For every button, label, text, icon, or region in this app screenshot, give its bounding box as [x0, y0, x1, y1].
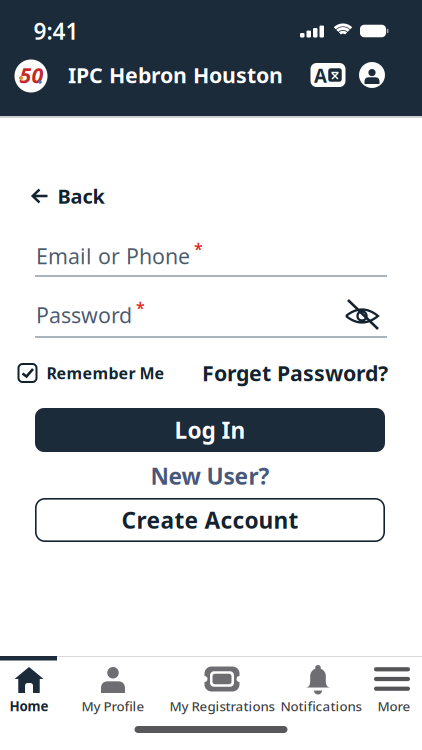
- button[interactable]: Back: [31, 183, 104, 209]
- staticText: Log In: [174, 415, 245, 445]
- staticText: My Registrations: [169, 697, 274, 715]
- button[interactable]: My Profile: [58, 656, 168, 726]
- staticText: Email or Phone: [36, 242, 190, 270]
- button[interactable]: Remember Me: [17, 362, 164, 384]
- staticText: Remember Me: [46, 362, 164, 384]
- staticText: More: [377, 697, 410, 715]
- button[interactable]: Translate: [310, 63, 345, 87]
- button[interactable]: New User?: [150, 461, 269, 491]
- button[interactable]: Log In: [35, 408, 385, 452]
- staticText: *: [194, 238, 203, 259]
- button[interactable]: Show password: [345, 300, 379, 330]
- button[interactable]: Home: [0, 656, 58, 726]
- staticText: 9:41: [33, 16, 78, 46]
- button[interactable]: Forget Password?: [202, 359, 388, 387]
- staticText: Create Account: [121, 505, 298, 535]
- staticText: 50: [19, 61, 43, 89]
- button[interactable]: More: [366, 656, 422, 726]
- staticText: A: [314, 63, 327, 88]
- button[interactable]: My Registrations: [168, 656, 276, 726]
- staticText: Back: [57, 183, 104, 209]
- staticText: Home: [9, 697, 48, 715]
- button[interactable]: Create Account: [35, 498, 385, 542]
- staticText: Notifications: [280, 697, 361, 715]
- staticText: *: [136, 297, 145, 318]
- staticText: Forget Password?: [202, 359, 388, 387]
- button[interactable]: Notifications: [276, 656, 366, 726]
- staticText: New User?: [150, 461, 269, 491]
- button[interactable]: Account: [359, 62, 385, 88]
- staticText: My Profile: [81, 697, 144, 715]
- staticText: IPC Hebron Houston: [68, 61, 283, 89]
- staticText: Password: [36, 301, 132, 329]
